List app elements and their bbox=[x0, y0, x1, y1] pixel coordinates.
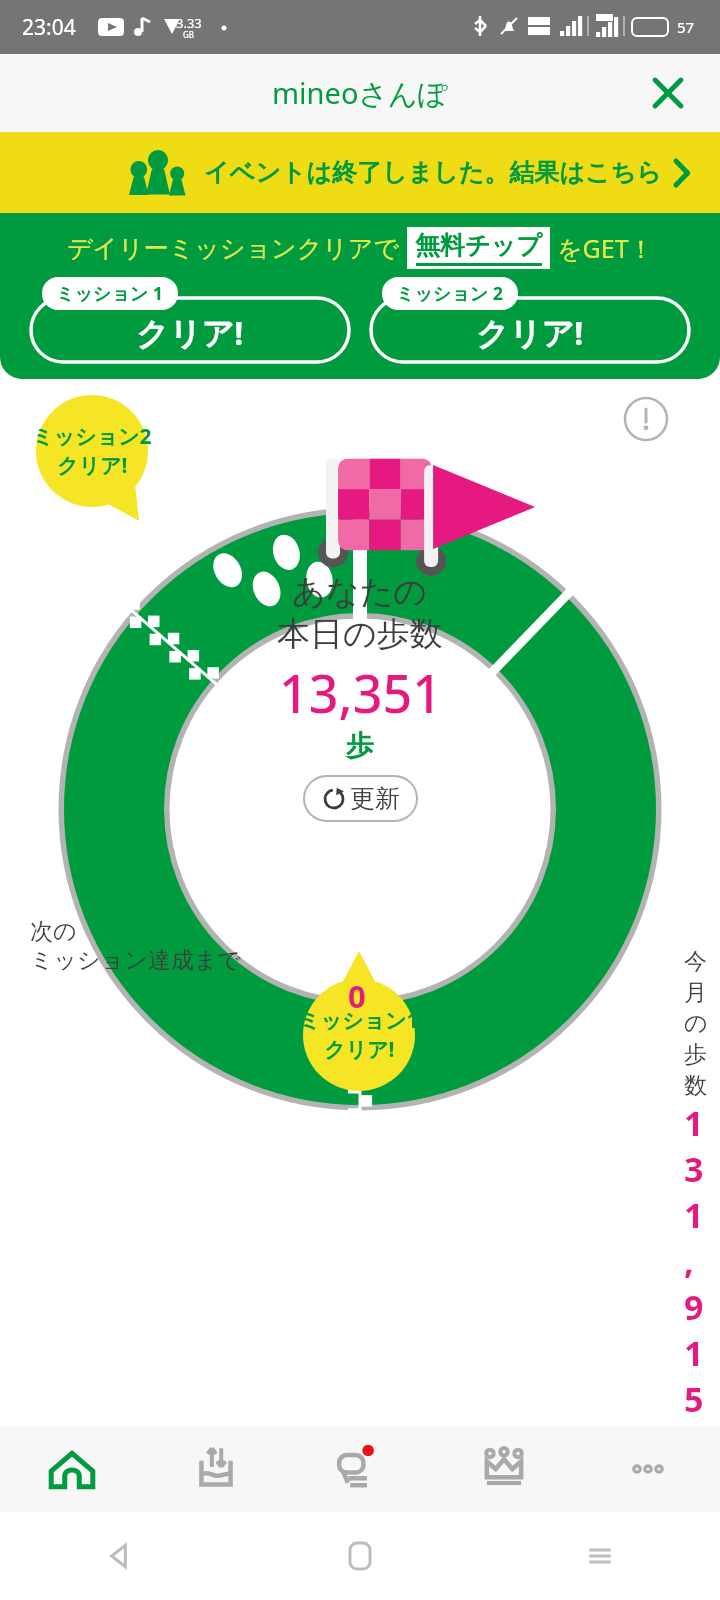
button[interactable]: イベントは終了しました。結果はこちら bbox=[0, 132, 720, 213]
staticText: 歩 bbox=[346, 728, 374, 763]
button[interactable]: Back bbox=[0, 1512, 240, 1600]
button[interactable]: Close bbox=[642, 67, 694, 119]
staticText: mineoさんぽ bbox=[272, 73, 448, 113]
staticText: をGET！ bbox=[557, 231, 654, 265]
staticText: 無料チップ bbox=[415, 230, 542, 261]
staticText: あなたの bbox=[292, 571, 428, 613]
staticText: ミッション達成まで bbox=[30, 946, 241, 975]
button[interactable]: 更新 bbox=[305, 777, 416, 820]
staticText: 次の bbox=[30, 917, 77, 946]
button[interactable]: クリア! bbox=[368, 295, 692, 365]
staticText: GB bbox=[183, 29, 195, 40]
staticText: 3.33 bbox=[176, 14, 202, 32]
button[interactable]: Information bbox=[620, 393, 672, 445]
staticText: 本日の歩数 bbox=[277, 613, 443, 655]
staticText: ミッション 1 bbox=[56, 281, 164, 306]
button[interactable]: Home bbox=[0, 1426, 144, 1512]
button[interactable]: Chat bbox=[288, 1426, 432, 1512]
button[interactable]: Recent apps bbox=[480, 1512, 720, 1600]
staticText: クリア! bbox=[57, 451, 128, 480]
staticText: 57 bbox=[677, 17, 695, 37]
button[interactable]: Data usage bbox=[144, 1426, 288, 1512]
staticText: 13,351 bbox=[279, 657, 442, 728]
staticText: イベントは終了しました。結果はこちら bbox=[204, 157, 662, 188]
button[interactable]: クリア! bbox=[28, 295, 352, 365]
button[interactable]: Home bbox=[240, 1512, 480, 1600]
staticText: クリア! bbox=[136, 311, 244, 355]
staticText: ミッション 2 bbox=[396, 281, 504, 306]
staticText: 23:04 bbox=[22, 13, 76, 42]
button[interactable]: Ranking bbox=[432, 1426, 576, 1512]
staticText: クリア! bbox=[476, 311, 584, 355]
button[interactable]: More bbox=[576, 1426, 720, 1512]
staticText: クリア! bbox=[324, 1035, 395, 1064]
staticText: ミッション2 bbox=[32, 422, 152, 451]
staticText: 0 bbox=[348, 975, 366, 1017]
staticText: デイリーミッションクリアで bbox=[67, 233, 400, 264]
staticText: 更新 bbox=[350, 783, 400, 814]
staticText: ミッション1 bbox=[299, 1006, 419, 1035]
